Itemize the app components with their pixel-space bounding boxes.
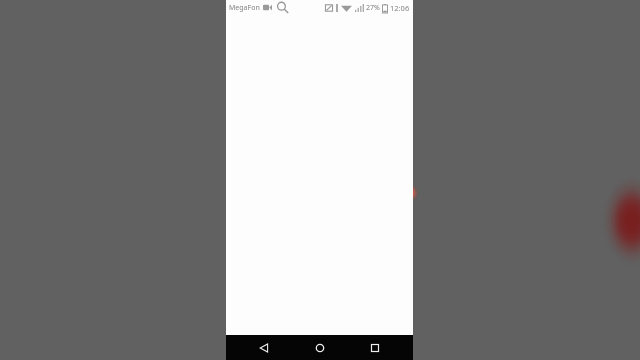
staticText: 27%	[366, 3, 380, 13]
button[interactable]: Back	[247, 335, 281, 360]
staticText: MegaFon	[229, 3, 260, 13]
staticText: 12:06	[390, 3, 410, 13]
button[interactable]: Home	[303, 335, 337, 360]
button[interactable]: Search	[276, 1, 289, 14]
button[interactable]: Recent apps	[358, 335, 392, 360]
